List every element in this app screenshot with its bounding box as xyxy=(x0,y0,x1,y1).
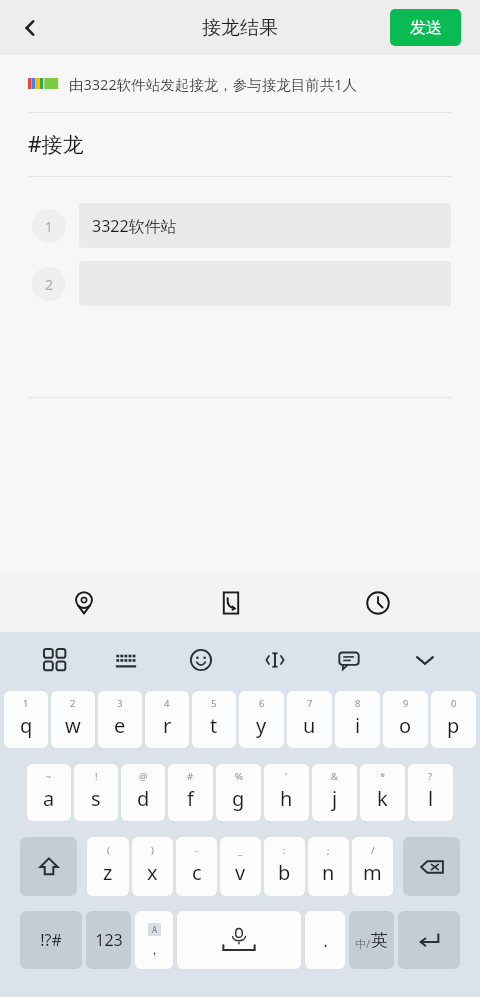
button[interactable]: 1 xyxy=(4,691,48,748)
button[interactable]: 8 xyxy=(335,691,380,748)
staticText: @ xyxy=(139,770,148,783)
button[interactable]: Enter xyxy=(398,911,460,969)
button[interactable]: * xyxy=(360,764,405,821)
staticText: / xyxy=(366,936,371,951)
staticText: 6 xyxy=(259,697,265,710)
staticText: 1 xyxy=(23,697,29,710)
staticText: s xyxy=(91,785,101,812)
button[interactable]: Cursor xyxy=(255,640,295,680)
button[interactable]: Emoji xyxy=(181,640,221,680)
button[interactable]: 2 xyxy=(32,261,451,306)
button[interactable]: _ xyxy=(220,837,261,896)
button[interactable]: 123 xyxy=(86,911,131,969)
staticText: h xyxy=(280,785,293,812)
button[interactable]: Shift xyxy=(20,837,77,896)
staticText: 9 xyxy=(403,697,409,710)
button[interactable]: Space xyxy=(177,911,301,969)
staticText: ~ xyxy=(46,770,52,783)
staticText: 由3322软件站发起接龙，参与接龙目前共1人 xyxy=(69,74,357,94)
staticText: t xyxy=(210,712,218,739)
staticText: 2 xyxy=(70,697,76,710)
button[interactable]: 4 xyxy=(145,691,189,748)
staticText: #接龙 xyxy=(28,130,84,159)
button[interactable]: Contact xyxy=(209,581,253,625)
button[interactable]: & xyxy=(312,764,357,821)
staticText: g xyxy=(232,785,245,812)
staticText: 4 xyxy=(164,697,170,710)
button[interactable]: ) xyxy=(132,837,173,896)
button[interactable]: !?# xyxy=(20,911,82,969)
staticText: z xyxy=(103,859,113,886)
button[interactable]: 中 xyxy=(349,911,394,969)
staticText: 5 xyxy=(211,697,217,710)
button[interactable]: A xyxy=(135,911,173,969)
button[interactable]: 7 xyxy=(287,691,332,748)
button[interactable]: ( xyxy=(87,837,129,896)
staticText: k xyxy=(377,785,388,812)
button[interactable]: # xyxy=(168,764,213,821)
button[interactable]: 3 xyxy=(98,691,142,748)
button[interactable]: 1 xyxy=(32,203,451,248)
staticText: ? xyxy=(428,770,433,783)
button[interactable]: ? xyxy=(408,764,453,821)
button[interactable]: : xyxy=(264,837,305,896)
staticText: y xyxy=(256,712,267,739)
staticText: w xyxy=(65,712,81,739)
staticText: q xyxy=(20,712,33,739)
button[interactable]: Apps xyxy=(35,640,75,680)
button[interactable]: Messages xyxy=(329,640,369,680)
button[interactable]: - xyxy=(176,837,217,896)
staticText: . xyxy=(323,929,328,952)
staticText: i xyxy=(355,712,361,739)
button[interactable]: Backspace xyxy=(403,837,460,896)
staticText: 发送 xyxy=(410,18,442,38)
staticText: - xyxy=(195,844,199,857)
button[interactable]: Back xyxy=(8,6,52,50)
staticText: 1 xyxy=(45,217,54,236)
staticText: l xyxy=(428,785,434,812)
staticText: r xyxy=(163,712,172,739)
staticText: f xyxy=(187,785,194,812)
staticText: 3322软件站 xyxy=(92,215,177,237)
staticText: : xyxy=(283,844,286,857)
staticText: ' xyxy=(285,770,288,783)
staticText: _ xyxy=(238,844,243,857)
button[interactable]: 0 xyxy=(431,691,476,748)
staticText: e xyxy=(114,712,126,739)
staticText: v xyxy=(235,859,246,886)
button[interactable]: Hide keyboard xyxy=(405,640,445,680)
button[interactable]: . xyxy=(305,911,345,969)
button[interactable]: 9 xyxy=(383,691,428,748)
staticText: p xyxy=(447,712,460,739)
button[interactable]: 发送 xyxy=(390,9,461,46)
button[interactable]: ! xyxy=(74,764,118,821)
staticText: d xyxy=(137,785,150,812)
staticText: / xyxy=(371,844,375,857)
staticText: ! xyxy=(95,770,98,783)
button[interactable]: ~ xyxy=(27,764,71,821)
staticText: 7 xyxy=(307,697,313,710)
staticText: n xyxy=(322,859,335,886)
button[interactable]: / xyxy=(352,837,393,896)
button[interactable]: 5 xyxy=(192,691,236,748)
staticText: u xyxy=(303,712,316,739)
button[interactable]: ; xyxy=(308,837,349,896)
button[interactable]: Time xyxy=(356,581,400,625)
button[interactable]: % xyxy=(216,764,261,821)
staticText: 0 xyxy=(451,697,457,710)
button[interactable]: @ xyxy=(121,764,165,821)
staticText: 接龙结果 xyxy=(202,16,278,40)
button[interactable]: 2 xyxy=(51,691,95,748)
staticText: % xyxy=(235,770,243,783)
staticText: m xyxy=(363,859,382,886)
staticText: c xyxy=(192,859,202,886)
staticText: ( xyxy=(107,844,110,857)
button[interactable]: Location xyxy=(62,581,106,625)
staticText: A xyxy=(152,924,158,935)
button[interactable]: ' xyxy=(264,764,309,821)
staticText: ) xyxy=(151,844,154,857)
button[interactable]: 6 xyxy=(239,691,284,748)
staticText: 英 xyxy=(371,930,388,951)
staticText: j xyxy=(332,785,338,812)
button[interactable]: Keyboard layout xyxy=(106,640,146,680)
